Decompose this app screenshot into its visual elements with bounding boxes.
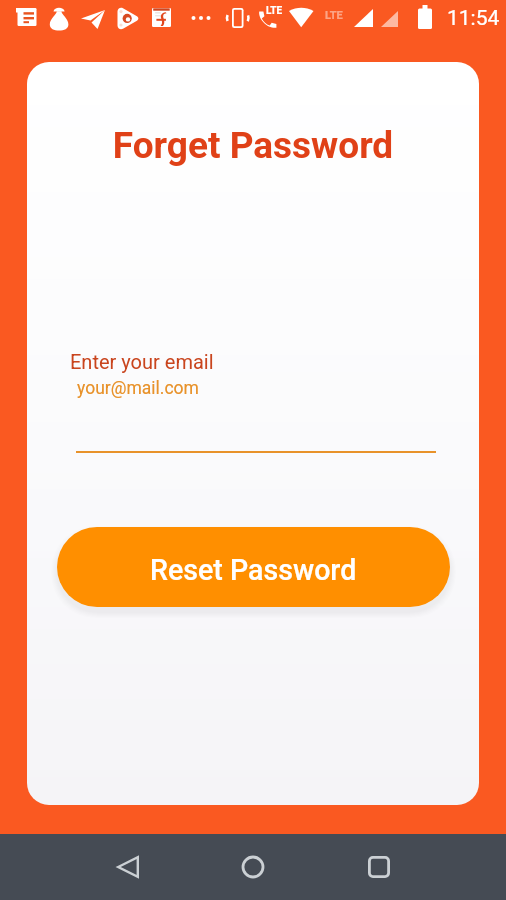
staticText: Forget Password	[27, 124, 479, 167]
staticText: 11:54	[447, 6, 500, 31]
button[interactable]: Back	[107, 846, 149, 888]
staticText: LTE	[266, 5, 283, 17]
button[interactable]: Enter your email	[67, 346, 439, 456]
staticText: LTE	[325, 9, 343, 22]
staticText: your@mail.com	[77, 378, 199, 399]
button[interactable]: Reset Password	[57, 527, 450, 607]
staticText: Reset Password	[150, 553, 357, 587]
button[interactable]: Home	[232, 846, 274, 888]
staticText: Enter your email	[70, 350, 214, 373]
button[interactable]: Recent apps	[358, 846, 400, 888]
